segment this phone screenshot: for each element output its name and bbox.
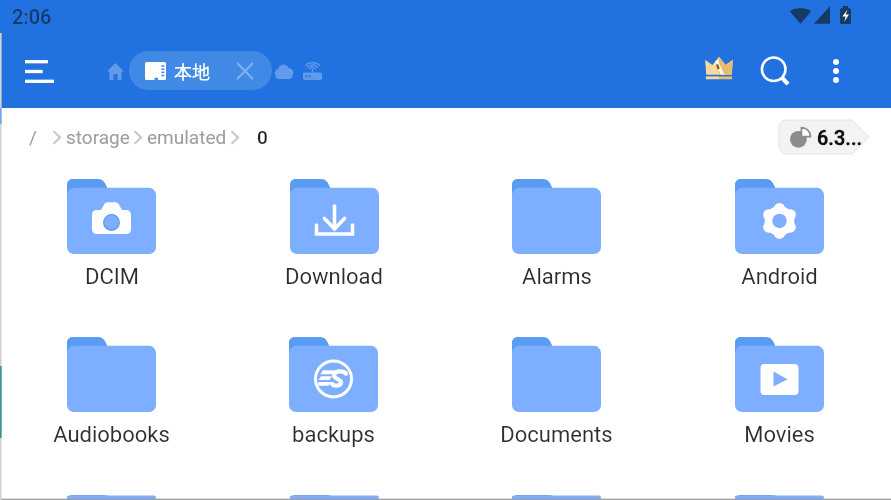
staticText: storage: [66, 126, 130, 148]
button[interactable]: Menu: [15, 47, 63, 95]
staticText: Android: [741, 264, 818, 290]
button[interactable]: Alarms: [445, 161, 668, 319]
staticText: 2:06: [12, 5, 52, 28]
staticText: Download: [285, 264, 383, 290]
staticText: 0: [257, 126, 268, 148]
button[interactable]: Audiobooks: [0, 319, 222, 477]
staticText: Movies: [744, 422, 815, 448]
button[interactable]: 6.3...: [779, 120, 869, 154]
staticText: backups: [292, 422, 375, 448]
button[interactable]: Music: [0, 477, 222, 500]
staticText: DCIM: [85, 264, 139, 290]
staticText: 6.3...: [817, 126, 863, 149]
button[interactable]: backups: [222, 319, 445, 477]
button[interactable]: Pictures: [445, 477, 668, 500]
button[interactable]: 本地: [129, 51, 272, 90]
button[interactable]: Download: [222, 161, 445, 319]
button[interactable]: Notifications: [222, 477, 445, 500]
staticText: /: [29, 126, 37, 148]
staticText: Documents: [500, 422, 613, 448]
button[interactable]: More options: [814, 49, 858, 93]
button[interactable]: Podcasts: [668, 477, 891, 500]
button[interactable]: DCIM: [0, 161, 222, 319]
button[interactable]: Android: [668, 161, 891, 319]
button[interactable]: Search: [753, 49, 797, 93]
staticText: Audiobooks: [53, 422, 170, 448]
staticText: emulated: [147, 126, 227, 148]
button[interactable]: Home: [93, 49, 137, 93]
button[interactable]: Movies: [668, 319, 891, 477]
button[interactable]: Premium: [697, 46, 741, 90]
staticText: Alarms: [522, 264, 592, 290]
button[interactable]: Network: [294, 53, 330, 89]
button[interactable]: Cloud storage: [266, 53, 302, 89]
button[interactable]: Documents: [445, 319, 668, 477]
staticText: 本地: [174, 58, 210, 84]
